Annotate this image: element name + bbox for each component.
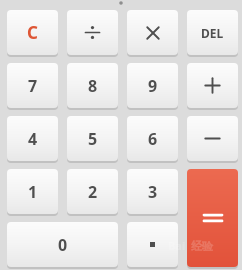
button[interactable]: 8 [67, 63, 118, 108]
staticText: 4 [28, 128, 38, 150]
staticText: 6 [148, 128, 158, 150]
button[interactable]: Plus [187, 63, 238, 108]
button[interactable]: Equals [187, 169, 238, 267]
button[interactable]: 0 [7, 222, 118, 267]
button[interactable]: Decimal point [127, 222, 178, 267]
button[interactable]: 5 [67, 116, 118, 161]
button[interactable]: 1 [7, 169, 58, 214]
staticText: 2 [88, 181, 98, 203]
button[interactable]: Clear [7, 10, 58, 55]
button[interactable]: 7 [7, 63, 58, 108]
staticText: C [27, 21, 38, 44]
button[interactable]: Delete [187, 10, 238, 55]
staticText: 1 [28, 181, 38, 203]
staticText: 9 [148, 75, 158, 97]
staticText: 7 [28, 75, 38, 97]
staticText: 3 [148, 181, 158, 203]
button[interactable]: 3 [127, 169, 178, 214]
button[interactable]: Divide [67, 10, 118, 55]
button[interactable]: 6 [127, 116, 178, 161]
staticText: DEL [201, 25, 224, 41]
button[interactable]: 2 [67, 169, 118, 214]
staticText: Bai 经验 [168, 238, 213, 253]
button[interactable]: Multiply [127, 10, 178, 55]
staticText: 0 [58, 234, 68, 256]
button[interactable]: Minus [187, 116, 238, 161]
button[interactable]: 9 [127, 63, 178, 108]
button[interactable]: 4 [7, 116, 58, 161]
staticText: 8 [88, 75, 98, 97]
staticText: 5 [88, 128, 98, 150]
